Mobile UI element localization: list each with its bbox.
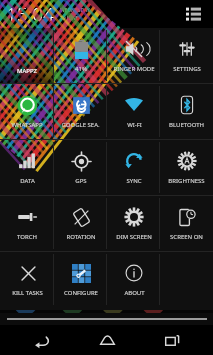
staticText: ROTATION xyxy=(66,233,96,241)
button[interactable]: Recent apps xyxy=(147,325,197,355)
button[interactable]: GOOGLE SEA. xyxy=(54,84,107,139)
staticText: WHATSAPP xyxy=(11,121,43,129)
staticText: WI-FI xyxy=(127,121,142,129)
button[interactable]: SYNC xyxy=(107,140,160,195)
staticText: GOOGLE SEA. xyxy=(61,121,100,129)
button[interactable]: SETTINGS xyxy=(160,28,213,83)
button[interactable]: MAPPZ xyxy=(0,28,54,83)
button[interactable]: GPS xyxy=(54,140,107,195)
button[interactable]: Back xyxy=(16,325,66,355)
button[interactable]: BLUETOOTH xyxy=(160,84,213,139)
button[interactable]: Notifications list xyxy=(181,2,205,26)
staticText: RINGER MODE xyxy=(113,65,155,73)
button[interactable]: 41% xyxy=(54,28,107,83)
staticText: KILL TASKS xyxy=(12,289,43,297)
button[interactable]: SCREEN ON xyxy=(160,196,213,251)
staticText: MAPPZ xyxy=(17,67,37,75)
staticText: SYNC xyxy=(126,177,142,185)
staticText: DIM SCREEN xyxy=(116,233,152,241)
button[interactable]: WHATSAPP xyxy=(0,84,54,139)
staticText: WEDNESDAY xyxy=(60,7,90,14)
button[interactable]: CONFIGURE xyxy=(54,252,107,307)
button[interactable]: DATA xyxy=(0,140,54,195)
staticText: BRIGHTNESS xyxy=(168,177,205,185)
staticText: 19 JUNE xyxy=(60,15,79,22)
button[interactable]: WI-FI xyxy=(107,84,160,139)
staticText: SCREEN ON xyxy=(170,233,203,241)
staticText: GPS xyxy=(75,177,87,185)
staticText: 41% xyxy=(75,65,87,73)
button[interactable]: DIM SCREEN xyxy=(107,196,160,251)
button[interactable]: TORCH xyxy=(0,196,54,251)
staticText: ABOUT xyxy=(124,289,145,297)
button[interactable]: BRIGHTNESS xyxy=(160,140,213,195)
button[interactable]: RINGER MODE xyxy=(107,28,160,83)
button[interactable]: ABOUT xyxy=(107,252,160,307)
button[interactable]: Home xyxy=(82,325,132,355)
button[interactable]: ROTATION xyxy=(54,196,107,251)
staticText: DATA xyxy=(20,177,35,185)
staticText: CONFIGURE xyxy=(64,289,98,297)
staticText: 15:04 xyxy=(6,1,55,27)
staticText: BLUETOOTH xyxy=(169,121,204,129)
button[interactable]: KILL TASKS xyxy=(0,252,54,307)
staticText: TORCH xyxy=(17,233,37,241)
staticText: SETTINGS xyxy=(173,65,201,73)
